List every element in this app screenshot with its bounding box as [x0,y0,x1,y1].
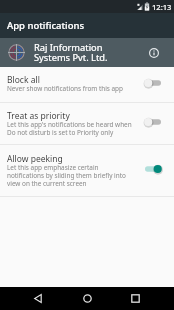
button[interactable]: Back [28,287,49,310]
staticText: Treat as priority [7,110,70,122]
button[interactable]: App info [147,46,161,60]
button[interactable]: Treat as priority [0,103,174,144]
staticText: Let this app's notifications be heard wh… [7,120,132,137]
button[interactable]: Home [77,287,98,310]
staticText: Block all [7,74,40,86]
button[interactable]: Off [145,115,161,129]
staticText: Raj Information Systems Pvt. Ltd. [34,41,108,64]
staticText: Never show notifications from this app [7,84,123,93]
staticText: Allow peeking [7,153,63,165]
staticText: 12:13 [152,2,172,12]
button[interactable]: On [145,162,161,176]
button[interactable]: Off [145,76,161,90]
staticText: App notifications [7,19,85,32]
staticText: Let this app emphasize certain notificat… [7,163,126,188]
button[interactable]: Allow peeking [0,145,174,196]
button[interactable]: Raj Information Systems Pvt. Ltd. [0,38,174,67]
button[interactable]: Recents [125,287,146,310]
button[interactable]: Block all [0,67,174,102]
